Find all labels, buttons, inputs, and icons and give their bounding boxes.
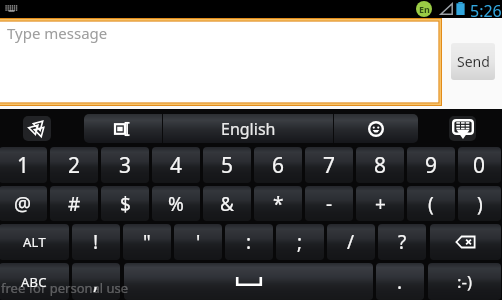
- staticText: :-): [457, 270, 473, 293]
- staticText: #: [68, 191, 81, 217]
- button[interactable]: Backspace: [430, 224, 501, 260]
- staticText: :: [246, 229, 252, 255]
- button[interactable]: :: [225, 224, 273, 260]
- button[interactable]: 7: [305, 147, 353, 183]
- staticText: ": [143, 229, 151, 255]
- button[interactable]: :-): [428, 263, 501, 300]
- staticText: ALT: [23, 233, 46, 251]
- staticText: free for personal use: [1, 279, 129, 297]
- staticText: &: [220, 191, 234, 217]
- button[interactable]: 0: [458, 147, 501, 183]
- staticText: Send: [457, 52, 490, 71]
- staticText: ;: [297, 229, 303, 255]
- button[interactable]: $: [101, 186, 149, 221]
- staticText: (: [428, 191, 434, 217]
- staticText: 5: [221, 151, 234, 180]
- staticText: En: [419, 3, 430, 15]
- staticText: %: [168, 191, 184, 217]
- staticText: 0: [473, 151, 486, 180]
- staticText: .: [397, 269, 403, 295]
- button[interactable]: +: [356, 186, 404, 221]
- staticText: 3: [119, 151, 132, 180]
- button[interactable]: ": [123, 224, 171, 260]
- button[interactable]: ?: [378, 224, 426, 260]
- button[interactable]: ): [458, 186, 501, 221]
- staticText: 5:26: [470, 0, 502, 18]
- staticText: 1: [17, 151, 30, 180]
- staticText: 8: [374, 151, 387, 180]
- button[interactable]: Change layout: [84, 114, 162, 143]
- button[interactable]: Type message: [0, 18, 442, 106]
- button[interactable]: *: [254, 186, 302, 221]
- button[interactable]: English: [163, 114, 333, 143]
- button[interactable]: ALT: [0, 224, 69, 260]
- staticText: English: [221, 118, 276, 140]
- button[interactable]: 9: [407, 147, 455, 183]
- button[interactable]: %: [152, 186, 200, 221]
- button[interactable]: -: [305, 186, 353, 221]
- button[interactable]: (: [407, 186, 455, 221]
- staticText: /: [347, 229, 355, 255]
- staticText: ABC: [21, 273, 47, 291]
- button[interactable]: ,: [72, 263, 120, 300]
- button[interactable]: @: [0, 186, 47, 221]
- staticText: 2: [68, 151, 81, 180]
- button[interactable]: 2: [50, 147, 98, 183]
- staticText: 6: [272, 151, 285, 180]
- staticText: -: [326, 191, 333, 217]
- staticText: ?: [398, 229, 407, 255]
- button[interactable]: Voice input: [23, 116, 51, 141]
- staticText: ,: [93, 269, 99, 295]
- staticText: @: [14, 191, 32, 217]
- button[interactable]: Emoji: [334, 114, 418, 143]
- button[interactable]: &: [203, 186, 251, 221]
- button[interactable]: !: [72, 224, 120, 260]
- button[interactable]: 1: [0, 147, 47, 183]
- button[interactable]: 6: [254, 147, 302, 183]
- button[interactable]: 8: [356, 147, 404, 183]
- button[interactable]: 4: [152, 147, 200, 183]
- staticText: 4: [170, 151, 183, 180]
- staticText: !: [93, 229, 99, 255]
- button[interactable]: Space: [124, 263, 373, 300]
- staticText: $: [120, 191, 131, 217]
- staticText: Type message: [7, 23, 108, 43]
- button[interactable]: Send: [451, 43, 495, 80]
- button[interactable]: ABC: [0, 263, 69, 300]
- button[interactable]: ': [174, 224, 222, 260]
- staticText: *: [273, 191, 284, 217]
- button[interactable]: 3: [101, 147, 149, 183]
- button[interactable]: .: [376, 263, 424, 300]
- staticText: 7: [323, 151, 336, 180]
- staticText: ): [477, 191, 483, 217]
- button[interactable]: ;: [276, 224, 324, 260]
- staticText: ': [196, 229, 201, 255]
- staticText: +: [375, 191, 386, 217]
- button[interactable]: Hide keyboard: [449, 116, 476, 141]
- button[interactable]: /: [327, 224, 375, 260]
- button[interactable]: 5: [203, 147, 251, 183]
- staticText: 9: [425, 151, 438, 180]
- button[interactable]: #: [50, 186, 98, 221]
